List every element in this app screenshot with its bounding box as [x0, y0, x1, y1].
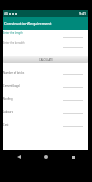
staticText: Labours: [3, 110, 13, 114]
button[interactable]: Cost: [3, 122, 88, 134]
staticText: Cost: [3, 123, 9, 127]
button[interactable]: Enter the length: [3, 30, 88, 39]
button[interactable]: Enter the breadth: [3, 40, 88, 49]
staticText: Cement(bags): [3, 84, 20, 88]
staticText: 9:41: [79, 11, 86, 16]
button[interactable]: Back: [12, 150, 26, 164]
button[interactable]: Recent apps: [66, 150, 80, 164]
staticText: Enter the length: [3, 31, 23, 35]
staticText: CALCULATE: [39, 58, 53, 62]
button[interactable]: Labours: [3, 109, 88, 121]
staticText: Number of bricks: [3, 71, 25, 75]
button[interactable]: CALCULATE: [3, 56, 88, 63]
button[interactable]: Cement(bags): [3, 83, 88, 95]
staticText: 4G: [4, 12, 8, 16]
staticText: Enter the breadth: [3, 41, 25, 45]
staticText: Roofing: [3, 97, 13, 101]
button[interactable]: Roofing: [3, 96, 88, 108]
button[interactable]: Number of bricks: [3, 70, 88, 82]
button[interactable]: Home: [39, 150, 53, 164]
staticText: ConstructionRequirement: [4, 21, 52, 26]
